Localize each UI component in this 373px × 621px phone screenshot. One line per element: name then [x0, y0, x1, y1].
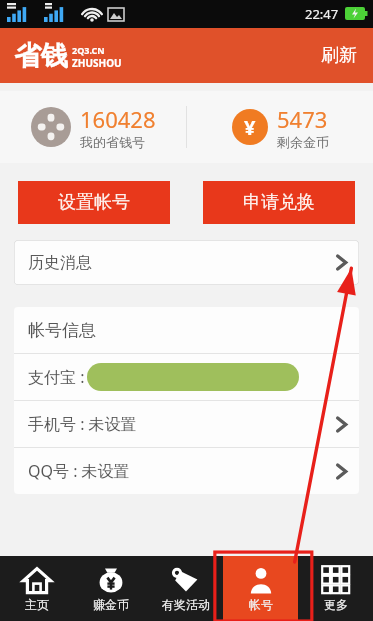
- button[interactable]: 更多: [298, 556, 373, 621]
- button[interactable]: 主页: [0, 556, 74, 621]
- button[interactable]: 申请兑换: [203, 181, 355, 224]
- button[interactable]: 帐号: [223, 556, 298, 621]
- staticText: 赚金币: [93, 597, 129, 612]
- staticText: 5473: [277, 104, 328, 134]
- button[interactable]: 有奖活动: [148, 556, 223, 621]
- staticText: 支付宝 :: [28, 366, 85, 388]
- staticText: QQ号 : 未设置: [28, 460, 130, 482]
- button[interactable]: 设置帐号: [18, 181, 170, 224]
- staticText: 帐号信息: [28, 320, 96, 341]
- button[interactable]: 历史消息: [14, 240, 359, 285]
- staticText: 帐号: [249, 597, 273, 612]
- staticText: 22:47: [305, 5, 339, 23]
- staticText: ZHUSHOU: [72, 56, 122, 70]
- staticText: 更多: [324, 597, 348, 612]
- staticText: 2Q3.CN: [72, 44, 105, 56]
- staticText: 历史消息: [28, 253, 92, 273]
- staticText: 手机号 : 未设置: [28, 413, 137, 435]
- staticText: 刷新: [321, 44, 357, 67]
- button[interactable]: 赚金币: [74, 556, 148, 621]
- button[interactable]: 手机号 : 未设置: [14, 401, 359, 447]
- staticText: 主页: [25, 597, 49, 612]
- button[interactable]: QQ号 : 未设置: [14, 448, 359, 494]
- staticText: 申请兑换: [243, 191, 315, 214]
- button[interactable]: 支付宝 :: [14, 354, 359, 400]
- staticText: 160428: [80, 104, 156, 134]
- staticText: 我的省钱号: [80, 134, 145, 150]
- button[interactable]: 刷新: [305, 34, 373, 77]
- staticText: 省钱: [14, 39, 68, 73]
- staticText: 有奖活动: [162, 597, 210, 612]
- staticText: 设置帐号: [58, 191, 130, 214]
- button[interactable]: ¥: [187, 91, 373, 163]
- staticText: ¥: [244, 114, 256, 141]
- button[interactable]: 160428: [0, 91, 186, 163]
- staticText: 剩余金币: [277, 134, 329, 150]
